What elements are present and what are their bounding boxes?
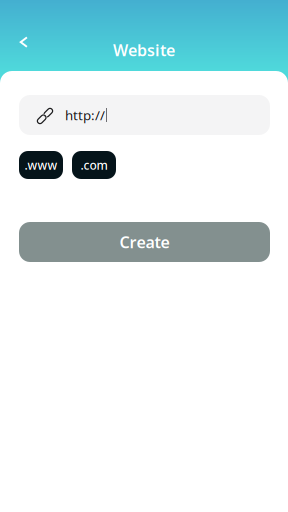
staticText: .www <box>24 157 57 173</box>
staticText: Create <box>119 231 169 253</box>
staticText: http:// <box>65 106 105 124</box>
staticText: .com <box>80 157 107 173</box>
button[interactable]: Back <box>12 30 36 54</box>
staticText: Website <box>113 39 175 61</box>
button[interactable]: http:// <box>19 95 270 135</box>
button[interactable]: Create <box>19 222 270 262</box>
button[interactable]: .www <box>19 151 63 179</box>
button[interactable]: .com <box>72 151 116 179</box>
